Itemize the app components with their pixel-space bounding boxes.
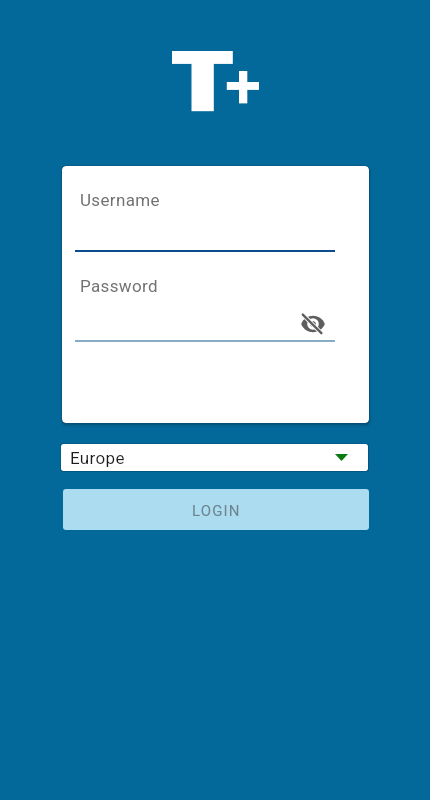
button[interactable]: Europe — [61, 444, 368, 471]
staticText: LOGIN — [192, 502, 241, 520]
other: T+ logo — [172, 51, 259, 111]
staticText: Europe — [70, 448, 125, 468]
staticText: Password — [80, 276, 158, 296]
button[interactable]: Show password — [297, 308, 329, 340]
staticText: Username — [80, 190, 160, 210]
button[interactable]: LOGIN — [63, 489, 369, 530]
